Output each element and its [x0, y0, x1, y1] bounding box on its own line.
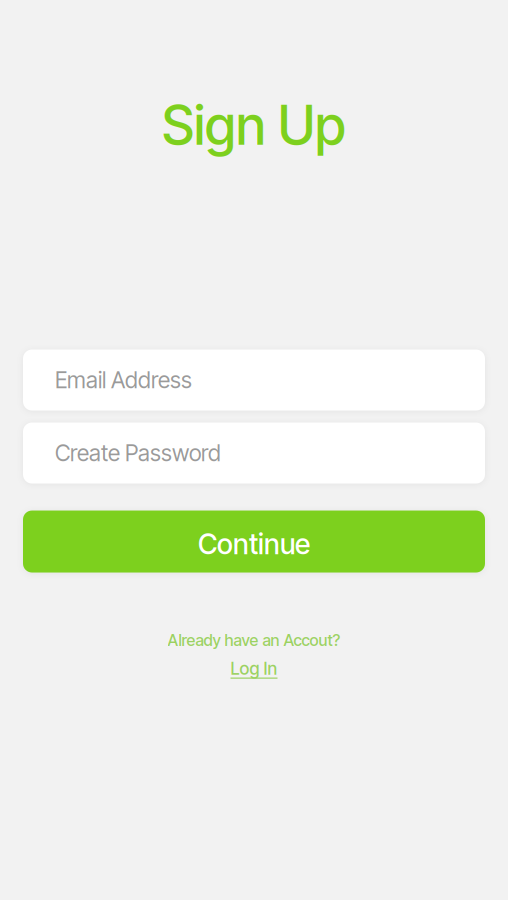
staticText: Log In: [230, 658, 277, 679]
button[interactable]: Log In: [230, 658, 277, 679]
staticText: Create Password: [55, 439, 221, 467]
staticText: Continue: [198, 527, 310, 561]
staticText: Email Address: [55, 366, 192, 394]
button[interactable]: Create Password: [23, 422, 485, 483]
staticText: Sign Up: [162, 93, 346, 157]
staticText: Already have an Accout?: [167, 630, 340, 650]
button[interactable]: Email Address: [23, 349, 485, 410]
button[interactable]: Continue: [23, 510, 485, 572]
